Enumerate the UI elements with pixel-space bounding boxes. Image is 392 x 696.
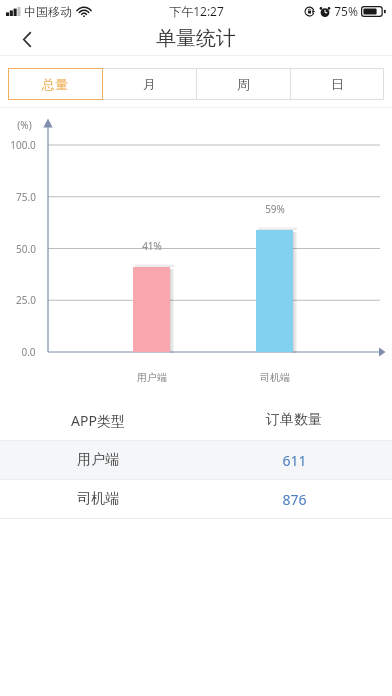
button[interactable]: 日 bbox=[290, 68, 384, 100]
staticText: 50.0 bbox=[16, 242, 36, 256]
button[interactable]: 总量 bbox=[8, 68, 102, 100]
button[interactable]: 用户端 bbox=[0, 441, 392, 479]
staticText: 25.0 bbox=[16, 293, 36, 307]
staticText: 100.0 bbox=[10, 138, 36, 152]
staticText: 司机端 bbox=[77, 490, 119, 508]
staticText: 日 bbox=[331, 76, 344, 92]
staticText: 单量统计 bbox=[156, 26, 236, 51]
staticText: 订单数量 bbox=[266, 411, 322, 429]
button[interactable]: 周 bbox=[196, 68, 290, 100]
staticText: (%) bbox=[17, 118, 32, 132]
button[interactable]: Back bbox=[0, 22, 53, 56]
staticText: 用户端 bbox=[137, 371, 167, 384]
staticText: 总量 bbox=[42, 76, 68, 92]
staticText: 611 bbox=[282, 451, 307, 470]
staticText: 周 bbox=[237, 76, 250, 92]
staticText: 75% bbox=[334, 3, 358, 19]
staticText: 月 bbox=[143, 76, 156, 92]
staticText: 中国移动 bbox=[24, 4, 72, 19]
staticText: 0.0 bbox=[21, 345, 36, 359]
staticText: 用户端 bbox=[77, 451, 119, 469]
staticText: 41% bbox=[142, 239, 162, 253]
staticText: 59% bbox=[265, 202, 285, 216]
button[interactable]: 司机端 bbox=[0, 480, 392, 518]
staticText: 876 bbox=[282, 490, 307, 509]
staticText: 下午12:27 bbox=[169, 3, 224, 19]
staticText: APP类型 bbox=[71, 411, 125, 430]
button[interactable]: 月 bbox=[102, 68, 196, 100]
staticText: 司机端 bbox=[260, 371, 290, 384]
staticText: 75.0 bbox=[16, 190, 36, 204]
